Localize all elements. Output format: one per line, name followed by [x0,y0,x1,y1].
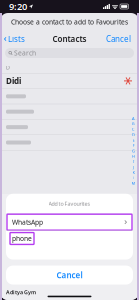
staticText: J [133,164,134,170]
staticText: B [132,121,135,126]
button[interactable]: Cancel [6,266,133,285]
staticText: Choose a contact to add to Favourites [11,18,128,26]
button[interactable]: Cancel [100,31,139,47]
staticText: Lists [8,34,25,44]
staticText: Contacts [52,34,86,44]
button[interactable]: WhatsApp [6,214,133,230]
staticText: K [132,170,134,175]
staticText: D [6,64,10,71]
staticText: 9:20 [9,0,27,13]
staticText: WhatsApp [12,218,43,227]
staticText: F [132,143,134,148]
staticText: L [132,175,134,180]
staticText: Cancel [56,270,82,280]
staticText: I [133,159,134,164]
staticText: Cancel [106,34,131,44]
staticText: A [132,116,135,121]
button[interactable]: Lists [0,31,30,47]
staticText: Search [14,49,36,57]
staticText: Didi [6,76,21,86]
staticText: G [132,148,135,153]
staticText: M [131,181,135,186]
button[interactable]: Didi [0,73,139,88]
staticText: H [132,154,135,159]
staticText: C [132,127,135,132]
staticText: E [132,137,134,143]
staticText: Add to Favourites [48,200,90,207]
staticText: phone [12,234,32,243]
button[interactable]: phone [6,231,133,260]
staticText: Aditya Gym [6,289,36,296]
staticText: D [132,132,135,137]
